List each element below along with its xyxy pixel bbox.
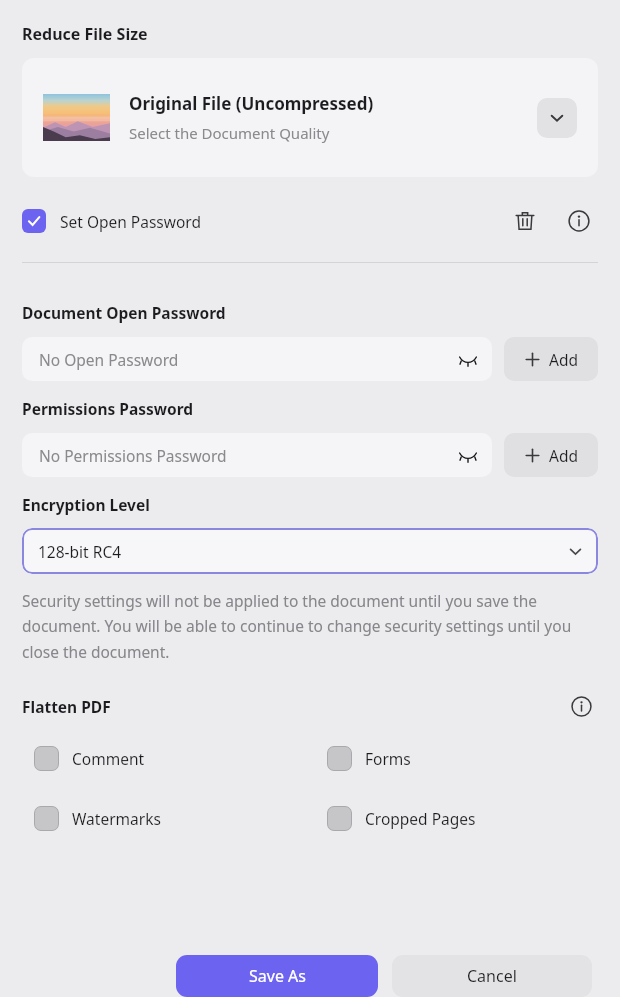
button[interactable]: Cancel bbox=[392, 955, 592, 997]
staticText: Watermarks bbox=[72, 808, 161, 829]
staticText: No Open Password bbox=[39, 349, 458, 370]
button[interactable]: Forms bbox=[327, 746, 411, 771]
button[interactable]: Show password bbox=[458, 349, 478, 369]
button[interactable]: Original File (Uncompressed) bbox=[22, 58, 598, 177]
button[interactable]: Select document quality bbox=[537, 98, 577, 138]
button[interactable]: Watermarks bbox=[34, 806, 327, 831]
button[interactable]: Flatten PDF information bbox=[564, 689, 598, 723]
staticText: Cropped Pages bbox=[365, 808, 476, 829]
staticText: Security settings will not be applied to… bbox=[22, 590, 598, 663]
button[interactable]: Add bbox=[504, 433, 598, 477]
button[interactable]: Save As bbox=[176, 955, 378, 997]
staticText: Encryption Level bbox=[22, 494, 150, 515]
staticText: No Permissions Password bbox=[39, 445, 458, 466]
staticText: Save As bbox=[249, 965, 306, 987]
button[interactable]: No Open Password bbox=[22, 337, 492, 381]
staticText: Comment bbox=[72, 748, 145, 769]
button[interactable]: No Permissions Password bbox=[22, 433, 492, 477]
staticText: Set Open Password bbox=[60, 211, 201, 232]
staticText: 128-bit RC4 bbox=[38, 541, 569, 562]
button[interactable]: Open password information bbox=[560, 202, 598, 240]
staticText: Cancel bbox=[467, 965, 517, 987]
button[interactable]: Set Open Password bbox=[22, 209, 506, 233]
staticText: Document Open Password bbox=[22, 302, 226, 323]
button[interactable]: 128-bit RC4 bbox=[22, 528, 598, 574]
staticText: Permissions Password bbox=[22, 398, 194, 419]
staticText: Add bbox=[549, 445, 578, 466]
button[interactable]: Cropped Pages bbox=[327, 806, 476, 831]
staticText: Forms bbox=[365, 748, 411, 769]
button[interactable]: Show password bbox=[458, 445, 478, 465]
staticText: Select the Document Quality bbox=[129, 123, 330, 143]
staticText: Add bbox=[549, 349, 578, 370]
staticText: Flatten PDF bbox=[22, 696, 564, 717]
button[interactable]: Delete password bbox=[506, 202, 544, 240]
button[interactable]: Add bbox=[504, 337, 598, 381]
staticText: Original File (Uncompressed) bbox=[129, 92, 374, 115]
staticText: Reduce File Size bbox=[22, 23, 148, 45]
button[interactable]: Comment bbox=[34, 746, 327, 771]
